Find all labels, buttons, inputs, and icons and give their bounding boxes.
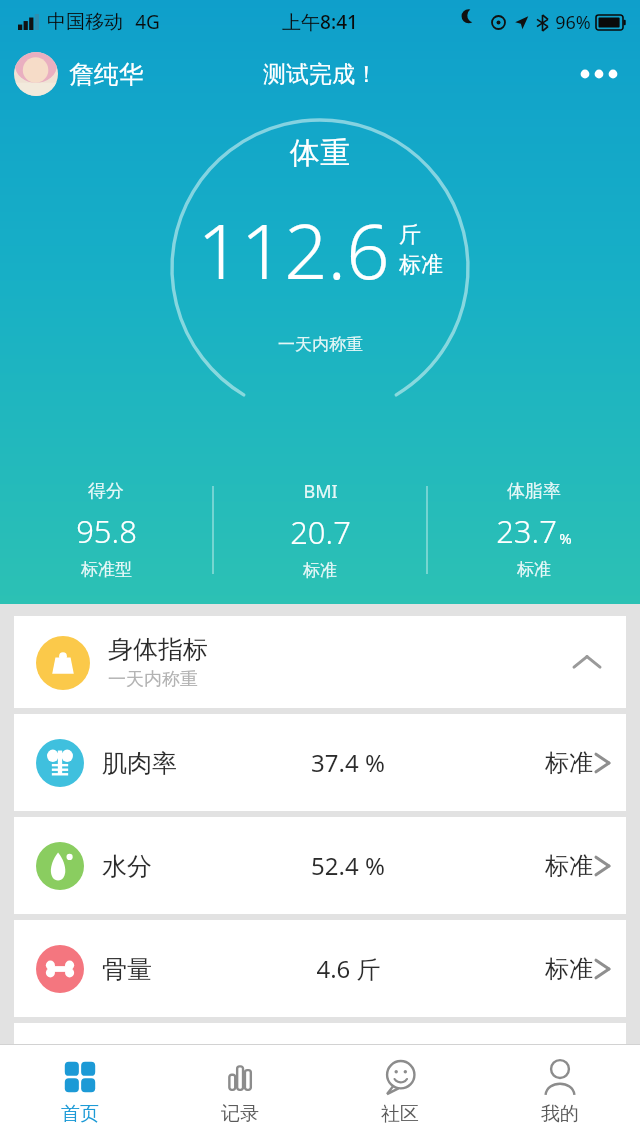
staticText: 标准 [545,851,593,881]
staticText: 4G [135,9,160,35]
staticText: 上午8:41 [282,9,358,35]
button[interactable]: More options [572,47,626,101]
button[interactable]: BMI [214,470,426,590]
button[interactable]: 肌肉率 [14,714,626,811]
staticText: 20.7 [290,511,351,553]
button[interactable]: 我的 [480,1045,640,1138]
button[interactable]: 记录 [160,1045,320,1138]
staticText: 标准 [545,748,593,778]
button[interactable]: 水分 [14,817,626,914]
staticText: 社区 [381,1102,419,1126]
staticText: 4.6 斤 [316,952,381,985]
staticText: 一天内称重 [108,668,198,691]
staticText: 标准 [399,251,443,279]
staticText: 肌肉率 [102,748,177,779]
staticText: % [559,528,572,548]
staticText: 体脂率 [507,480,561,503]
staticText: 标准 [517,559,551,580]
staticText: 52.4 % [311,849,385,882]
staticText: 体重 [290,134,350,172]
staticText: 标准型 [81,559,132,580]
staticText: 标准 [303,560,337,581]
staticText: 骨量 [102,954,152,985]
staticText: 得分 [88,480,124,503]
button[interactable]: 体脂率 [428,470,640,590]
button[interactable]: 首页 [0,1045,160,1138]
staticText: 身体指标 [108,634,208,665]
staticText: 23.7 [496,510,557,552]
staticText: 记录 [221,1102,259,1126]
staticText: BMI [303,479,338,504]
staticText: 112.6 [197,198,390,302]
staticText: 测试完成！ [263,60,378,89]
button[interactable]: 身体指标 [14,616,626,708]
staticText: 96% [555,10,591,35]
button[interactable]: 詹纯华 [14,52,144,96]
staticText: 水分 [102,851,152,882]
button[interactable]: 骨量 [14,920,626,1017]
staticText: 一天内称重 [278,334,363,355]
button[interactable]: 社区 [320,1045,480,1138]
staticText: 首页 [61,1102,99,1126]
staticText: 标准 [545,954,593,984]
staticText: 95.8 [76,510,137,552]
staticText: 斤 [399,221,421,249]
staticText: 我的 [541,1102,579,1126]
button[interactable]: 得分 [0,470,212,590]
staticText: 詹纯华 [69,59,144,90]
staticText: 中国移动 [47,10,123,34]
staticText: 37.4 % [311,746,385,779]
